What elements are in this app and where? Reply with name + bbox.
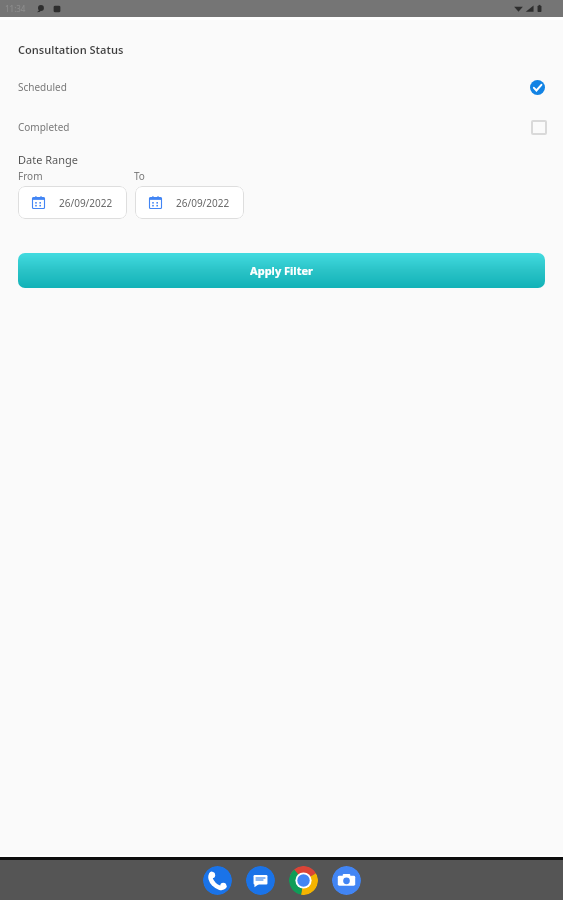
- button[interactable]: 26/09/2022: [18, 186, 127, 219]
- staticText: Completed: [18, 120, 70, 134]
- staticText: Date Range: [18, 152, 79, 167]
- staticText: Consultation Status: [18, 42, 124, 57]
- button[interactable]: 26/09/2022: [135, 186, 244, 219]
- button[interactable]: Chrome browser: [289, 866, 318, 895]
- button[interactable]: Camera: [332, 866, 361, 895]
- staticText: 11:34: [5, 3, 26, 14]
- staticText: From: [18, 169, 43, 183]
- button[interactable]: Messages: [246, 866, 275, 895]
- button[interactable]: Completed: [0, 114, 563, 140]
- staticText: 26/09/2022: [59, 196, 113, 210]
- button[interactable]: Phone: [203, 866, 232, 895]
- button[interactable]: Apply Filter: [18, 253, 545, 288]
- staticText: 26/09/2022: [176, 196, 230, 210]
- staticText: To: [134, 169, 145, 183]
- staticText: Scheduled: [18, 80, 67, 94]
- staticText: Apply Filter: [250, 263, 313, 278]
- button[interactable]: Scheduled: [0, 74, 563, 100]
